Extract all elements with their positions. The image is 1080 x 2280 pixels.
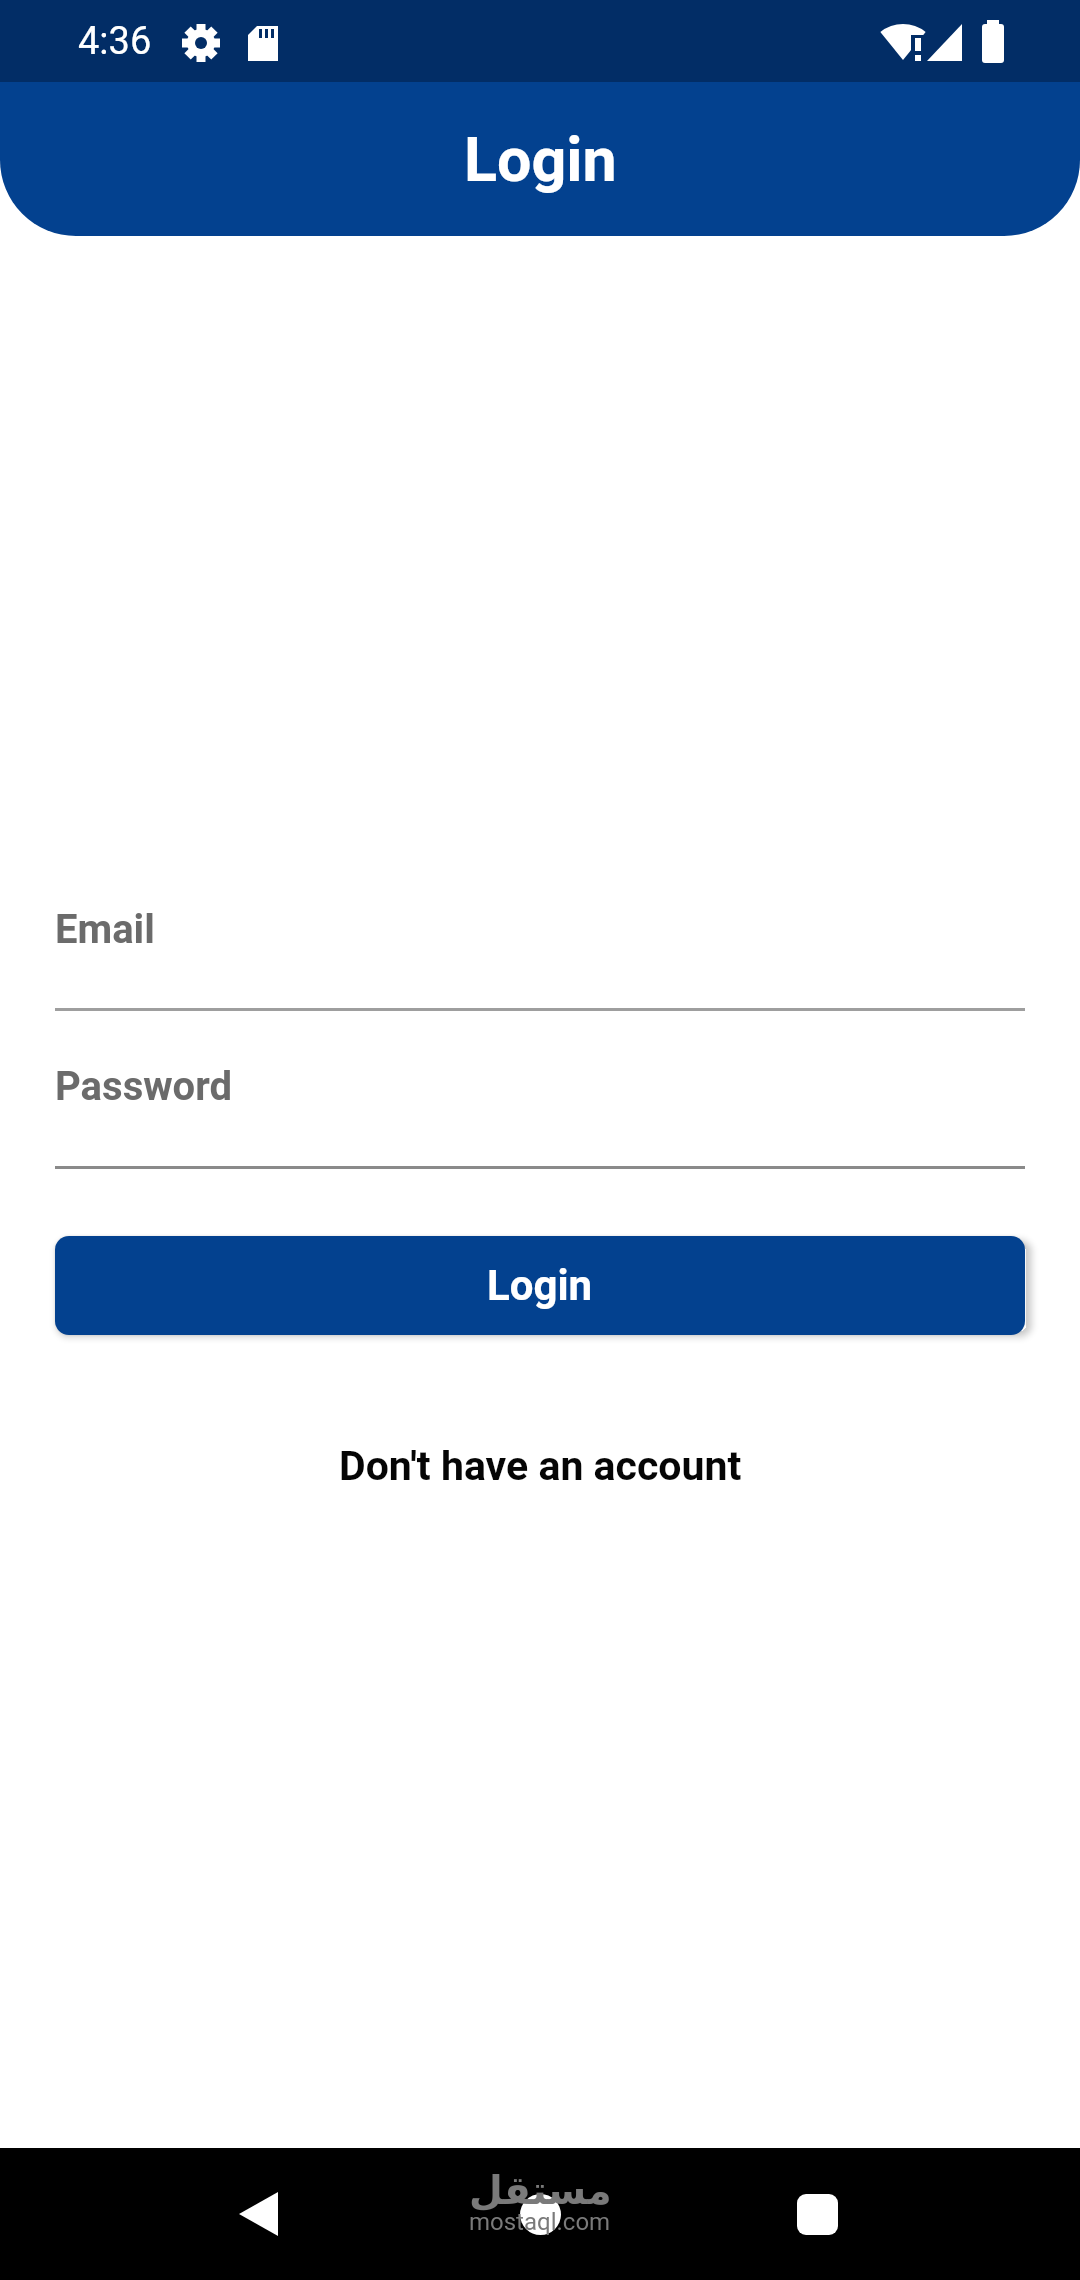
staticText: Login bbox=[487, 1261, 593, 1310]
button[interactable] bbox=[229, 2184, 289, 2244]
staticText: mostaql.com bbox=[469, 2208, 611, 2236]
button[interactable]: Don't have an account bbox=[339, 1442, 742, 1490]
button[interactable] bbox=[791, 2188, 844, 2241]
staticText: Email bbox=[55, 906, 155, 953]
staticText: 4:36 bbox=[78, 19, 152, 64]
button[interactable]: Login bbox=[55, 1236, 1025, 1335]
staticText: مستقل bbox=[469, 2168, 612, 2213]
staticText: Password bbox=[55, 1063, 233, 1110]
staticText: Login bbox=[464, 124, 617, 195]
button[interactable] bbox=[510, 2184, 570, 2244]
